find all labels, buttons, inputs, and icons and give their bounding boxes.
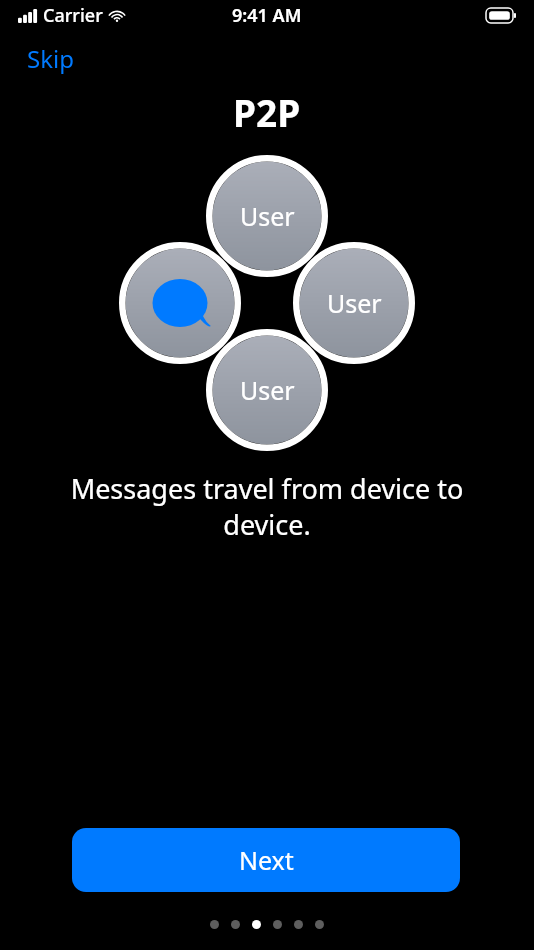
button[interactable]: User [206, 155, 328, 277]
staticText: User [240, 373, 295, 407]
staticText: You [158, 286, 202, 320]
staticText: Next [239, 843, 294, 877]
staticText: 9:41 AM [232, 3, 302, 28]
staticText: Skip [27, 42, 74, 75]
staticText: Carrier [43, 3, 103, 28]
button[interactable]: User [293, 242, 415, 364]
staticText: User [327, 286, 382, 320]
button[interactable]: User [206, 329, 328, 451]
staticText: Messages travel from device to device. [44, 470, 490, 543]
staticText: User [240, 199, 295, 233]
staticText: P2P [233, 87, 301, 137]
button[interactable]: Next [72, 828, 460, 892]
button[interactable]: You [119, 242, 241, 364]
button[interactable]: Skip [18, 37, 83, 80]
